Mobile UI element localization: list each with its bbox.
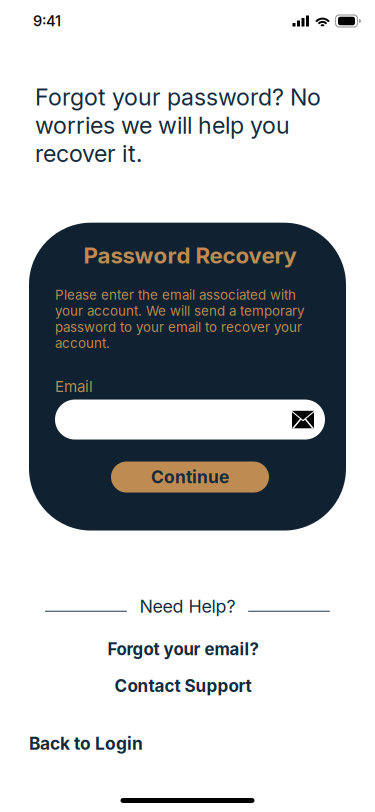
button[interactable]: Continue <box>111 462 269 493</box>
staticText: 9:41 <box>33 12 61 30</box>
staticText: Contact Support <box>114 675 251 696</box>
staticText: Back to Login <box>29 733 143 754</box>
button[interactable]: Contact Support <box>0 675 366 696</box>
button[interactable]: Back to Login <box>29 733 143 754</box>
button[interactable]: Forgot your email? <box>0 639 366 659</box>
staticText: Continue <box>151 467 229 488</box>
staticText: Email <box>55 377 93 395</box>
staticText: Need Help? <box>139 595 235 617</box>
staticText: Forgot your email? <box>107 639 258 659</box>
staticText: Password Recovery <box>83 242 296 269</box>
staticText: Please enter the email associated with y… <box>55 287 304 351</box>
staticText: Forgot your password? No worries we will… <box>35 83 321 168</box>
